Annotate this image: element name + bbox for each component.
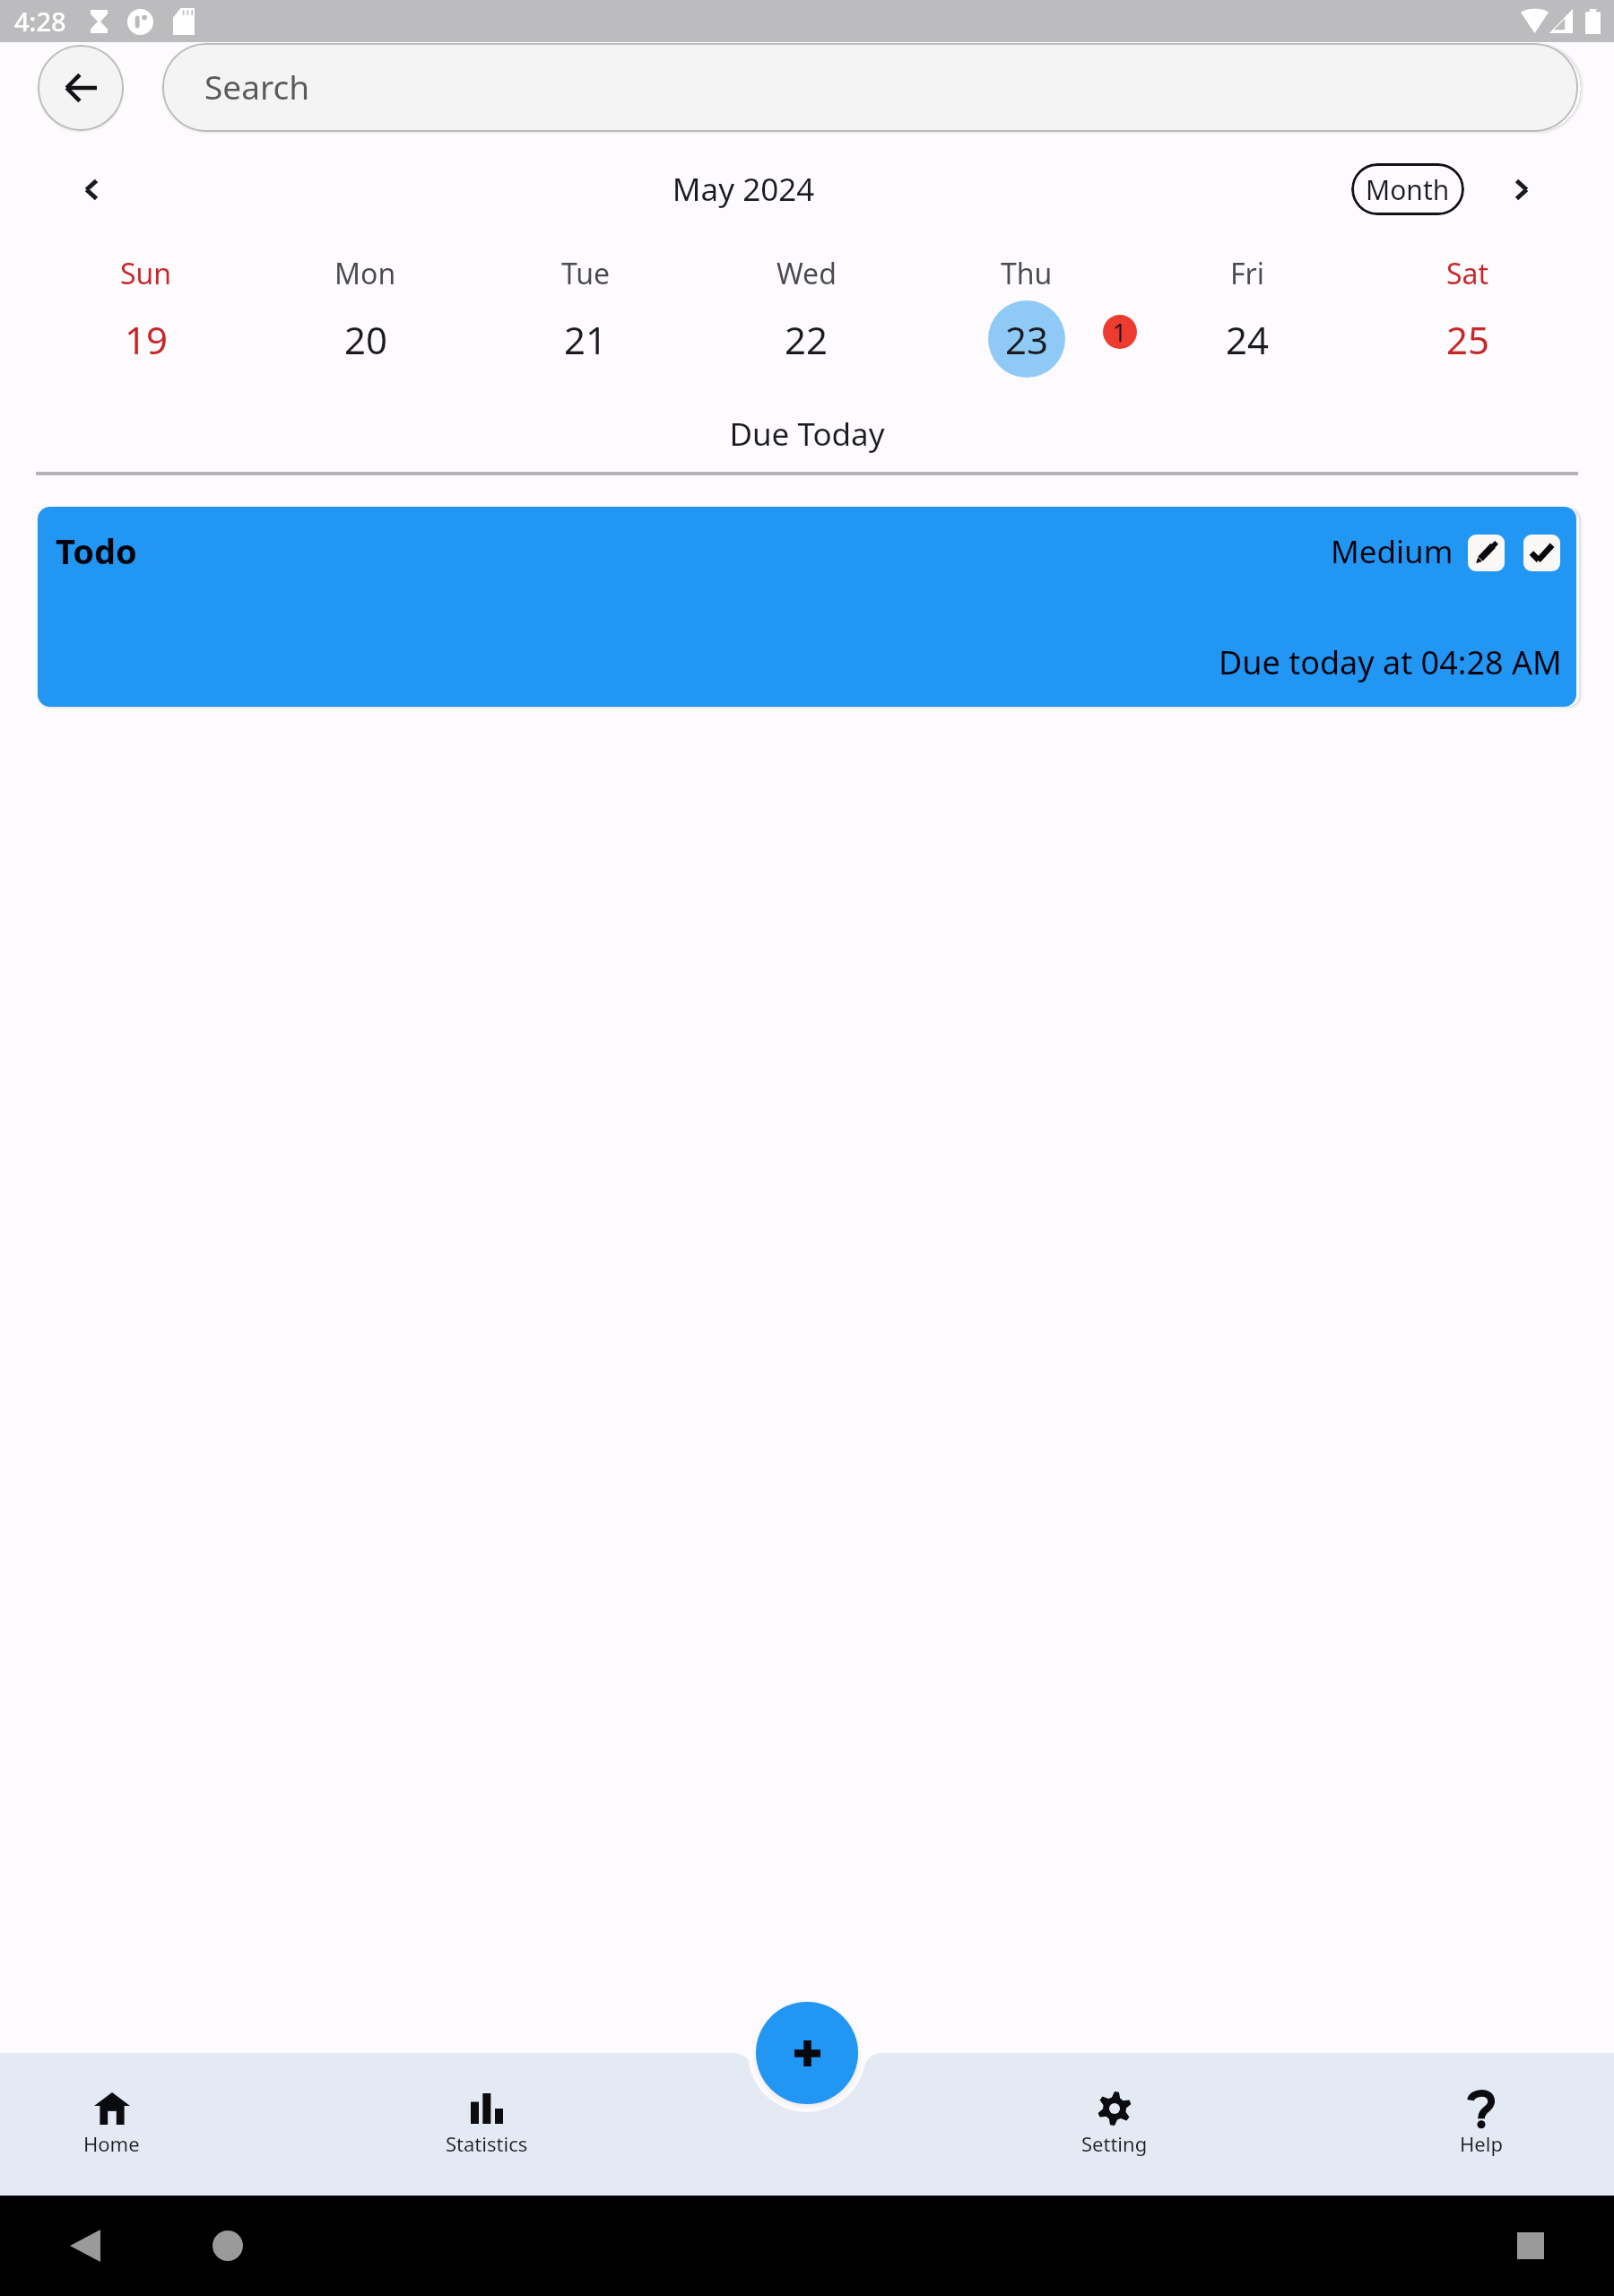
staticText: 1 [1113,316,1127,349]
staticText: 20 [344,314,388,365]
staticText: 21 [564,314,608,365]
button[interactable]: Edit task [1468,535,1505,571]
button[interactable]: Setting [1016,2089,1213,2202]
staticText: Medium [1331,530,1453,573]
staticText: Month [1366,171,1450,208]
button[interactable]: Next month [1493,161,1550,218]
button[interactable]: 21 [547,300,624,378]
staticText: Todo [56,527,137,574]
button[interactable]: 20 [327,300,404,378]
staticText: 25 [1446,314,1490,365]
staticText: 22 [785,314,829,365]
staticText: Fri [1230,254,1265,293]
staticText: Thu [1001,254,1053,293]
staticText: Due today at 04:28 AM [1219,640,1562,684]
staticText: Wed [777,254,837,293]
staticText: 24 [1226,314,1270,365]
button[interactable]: Add task [756,2002,858,2104]
button[interactable]: Statistics [388,2089,586,2202]
button[interactable]: Search [162,43,1578,132]
staticText: Setting [1081,2130,1148,2157]
staticText: Mon [334,254,396,293]
button[interactable]: 23 [988,300,1065,378]
staticText: Help [1460,2130,1503,2157]
staticText: May 2024 [129,168,1358,211]
staticText: Search [204,64,310,109]
staticText: 23 [1005,314,1049,365]
staticText: Home [83,2130,140,2157]
staticText: Sat [1446,254,1489,293]
staticText: 19 [125,314,169,365]
staticText: 4:28 [14,4,66,39]
button[interactable]: Todo [38,507,1576,707]
staticText: Due Today [0,413,1614,456]
staticText: Tue [561,254,611,293]
button[interactable]: Back [38,45,124,131]
staticText: Statistics [446,2130,528,2157]
button[interactable]: Previous month [63,161,120,218]
button[interactable]: 25 [1429,300,1506,378]
staticText: Sun [120,254,172,293]
button[interactable]: 24 [1209,300,1286,378]
button[interactable]: Home [13,2089,210,2202]
button[interactable]: Month [1351,163,1464,215]
button[interactable]: Help [1383,2089,1580,2202]
button[interactable]: 19 [108,300,185,378]
button[interactable]: 22 [768,300,845,378]
button[interactable]: Complete task [1523,535,1560,571]
